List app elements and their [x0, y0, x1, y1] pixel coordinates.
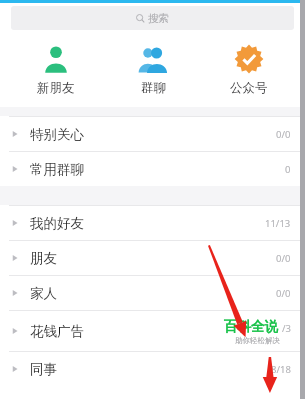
staticText: 新朋友 — [37, 80, 75, 96]
staticText: 同事 — [30, 361, 57, 378]
button[interactable]: 家人 — [0, 276, 305, 310]
staticText: 花钱广告 — [30, 323, 84, 340]
staticText: 百科全说 — [224, 318, 278, 335]
button[interactable]: 群聊 — [112, 40, 194, 100]
staticText: 朋友 — [30, 250, 57, 267]
staticText: 助你轻松解决 — [235, 336, 280, 345]
button[interactable]: 花钱广告 — [0, 311, 305, 351]
button[interactable]: 搜索 — [11, 6, 294, 30]
staticText: 0/0 — [276, 252, 291, 265]
staticText: 0 — [285, 163, 291, 176]
button[interactable]: 新朋友 — [15, 40, 97, 100]
button[interactable]: 朋友 — [0, 241, 305, 275]
button[interactable]: 公众号 — [208, 40, 290, 100]
staticText: 0/0 — [276, 128, 291, 141]
staticText: 公众号 — [230, 80, 268, 96]
staticText: 群聊 — [141, 80, 166, 96]
staticText: /3 — [282, 322, 291, 335]
staticText: 11/13 — [265, 217, 291, 230]
button[interactable]: 特别关心 — [0, 117, 305, 151]
button[interactable]: 常用群聊 — [0, 152, 305, 186]
button[interactable]: 我的好友 — [0, 206, 305, 240]
staticText: 特别关心 — [30, 126, 84, 143]
staticText: 常用群聊 — [30, 161, 84, 178]
staticText: 搜索 — [148, 12, 169, 25]
staticText: 0/0 — [276, 287, 291, 300]
button[interactable]: 同事 — [0, 352, 305, 386]
staticText: 我的好友 — [30, 215, 84, 232]
staticText: 家人 — [30, 285, 57, 302]
staticText: 8/18 — [271, 363, 291, 376]
